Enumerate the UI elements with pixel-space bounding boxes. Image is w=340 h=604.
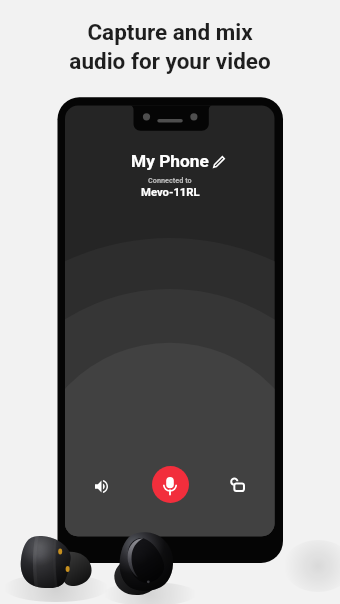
- staticText: My Phone: [131, 151, 209, 171]
- button[interactable]: Speaker volume: [88, 473, 114, 499]
- staticText: Mevo-11RL: [141, 186, 200, 199]
- button[interactable]: Rename device: [208, 151, 230, 173]
- staticText: Connected to: [148, 176, 192, 185]
- staticText: Capture and mix audio for your video: [0, 19, 340, 75]
- button[interactable]: Unlock: [225, 472, 251, 498]
- button[interactable]: Record: [152, 466, 189, 503]
